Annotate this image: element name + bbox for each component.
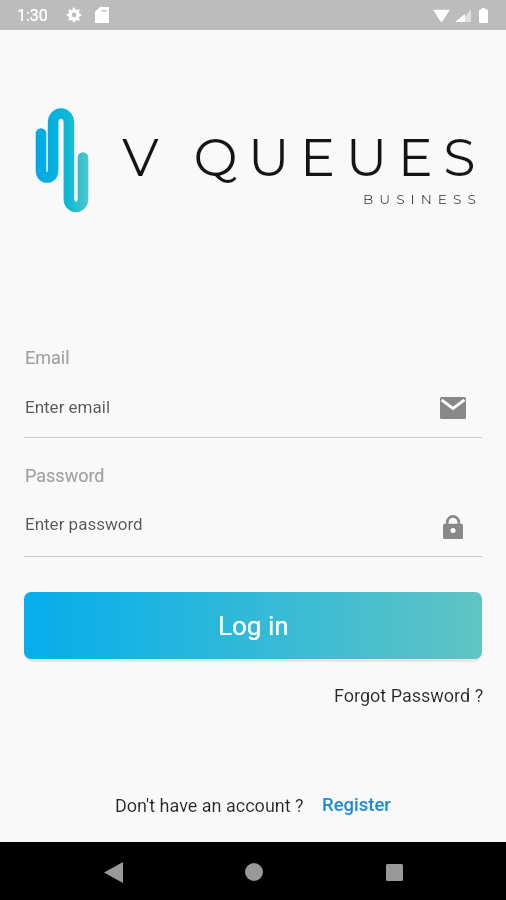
button[interactable]: Log in [24,592,482,659]
staticText: Don't have an account ? [115,795,304,816]
button[interactable]: Forgot Password ? [326,680,492,711]
staticText: Enter password [25,514,143,534]
staticText: Register [322,794,391,816]
staticText: Forgot Password ? [334,685,484,706]
staticText: BUSINESS [363,191,482,208]
button[interactable]: Back [85,844,141,900]
staticText: Log in [218,611,289,641]
staticText: 1:30 [17,6,48,25]
staticText: Password [25,465,105,486]
staticText: Enter email [25,397,111,417]
button[interactable]: Register [318,789,395,821]
staticText: V QUEUES [122,125,487,189]
button[interactable]: Home [226,844,282,900]
button[interactable]: Recent apps [366,844,422,900]
staticText: Email [25,347,70,368]
